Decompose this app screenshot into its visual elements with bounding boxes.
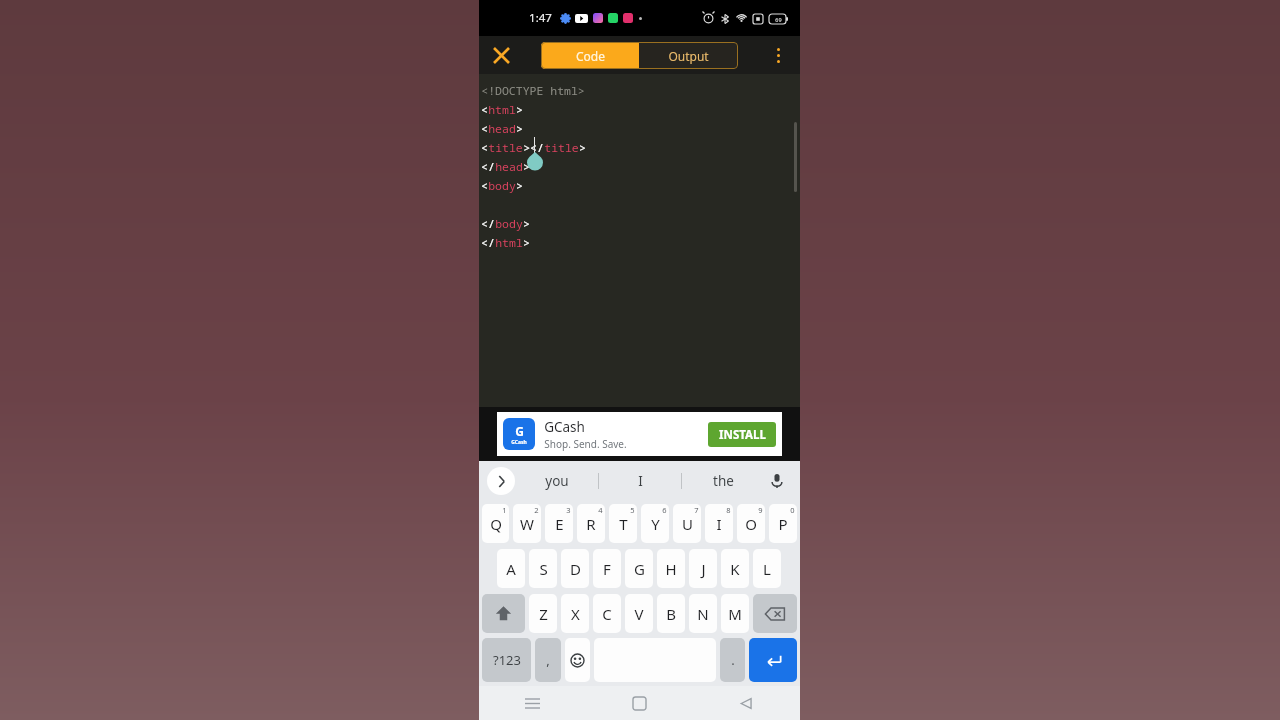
staticText: Z	[539, 604, 548, 624]
staticText: W	[520, 514, 534, 534]
staticText: D	[570, 559, 581, 579]
staticText: H	[665, 559, 677, 579]
staticText: Y	[651, 514, 660, 534]
staticText: >	[516, 121, 523, 137]
staticText: html	[495, 235, 523, 251]
staticText: 5	[630, 505, 635, 515]
button[interactable]: K	[721, 549, 749, 588]
staticText: title	[544, 140, 579, 156]
button[interactable]: Close	[487, 41, 515, 69]
staticText: N	[697, 604, 709, 624]
button[interactable]: Backspace	[753, 594, 797, 633]
staticText: you	[545, 472, 569, 490]
button[interactable]: I	[705, 504, 733, 543]
button[interactable]: I	[599, 461, 681, 501]
staticText: >	[516, 178, 523, 194]
staticText: A	[506, 559, 516, 579]
staticText: <!DOCTYPE html>	[481, 83, 585, 99]
staticText: >	[516, 102, 523, 118]
staticText: 7	[694, 505, 699, 515]
staticText: G	[515, 423, 524, 439]
button[interactable]: Home	[586, 686, 693, 720]
staticText: ?123	[493, 651, 521, 669]
staticText: K	[730, 559, 740, 579]
staticText: I	[716, 514, 722, 534]
staticText: E	[555, 514, 564, 534]
button[interactable]: Enter	[749, 638, 797, 682]
button[interactable]: X	[561, 594, 589, 633]
button[interactable]: .	[720, 638, 745, 682]
button[interactable]: F	[593, 549, 621, 588]
button[interactable]: G	[497, 412, 782, 456]
staticText: body	[488, 178, 516, 194]
button[interactable]: Recents	[479, 686, 586, 720]
staticText: 69	[775, 16, 782, 23]
staticText: html	[488, 102, 516, 118]
button[interactable]: O	[737, 504, 765, 543]
staticText: Output	[668, 48, 709, 64]
button[interactable]: the	[682, 461, 764, 501]
button[interactable]: S	[529, 549, 557, 588]
staticText: 8	[726, 505, 731, 515]
staticText: C	[602, 604, 612, 624]
button[interactable]: Expand suggestions	[487, 467, 515, 495]
staticText: ></	[523, 140, 544, 156]
button[interactable]: ?123	[482, 638, 531, 682]
button[interactable]: B	[657, 594, 685, 633]
button[interactable]: G	[625, 549, 653, 588]
button[interactable]: D	[561, 549, 589, 588]
button[interactable]: Back	[693, 686, 800, 720]
staticText: </	[481, 159, 495, 175]
button[interactable]: M	[721, 594, 749, 633]
staticText: Code	[576, 48, 605, 64]
button[interactable]: N	[689, 594, 717, 633]
staticText: </	[481, 216, 495, 232]
staticText: ,	[546, 651, 550, 669]
button[interactable]: A	[497, 549, 525, 588]
staticText: head	[495, 159, 523, 175]
button[interactable]: R	[577, 504, 605, 543]
staticText: J	[701, 559, 706, 579]
staticText: body	[495, 216, 523, 232]
button[interactable]: C	[593, 594, 621, 633]
button[interactable]: J	[689, 549, 717, 588]
button[interactable]: you	[515, 461, 598, 501]
staticText: M	[728, 604, 742, 624]
staticText: 1	[502, 505, 507, 515]
button[interactable]: W	[513, 504, 541, 543]
staticText: T	[619, 514, 628, 534]
button[interactable]: E	[545, 504, 573, 543]
button[interactable]: ,	[535, 638, 561, 682]
button[interactable]: Y	[641, 504, 669, 543]
button[interactable]: U	[673, 504, 701, 543]
button[interactable]: Z	[529, 594, 557, 633]
staticText: R	[586, 514, 596, 534]
staticText: 6	[662, 505, 667, 515]
staticText: .	[731, 651, 735, 669]
button[interactable]: Q	[482, 504, 509, 543]
button[interactable]: Shift	[482, 594, 525, 633]
staticText: V	[634, 604, 644, 624]
button[interactable]: Output	[639, 42, 738, 69]
button[interactable]: INSTALL	[708, 422, 776, 447]
staticText: 3	[566, 505, 571, 515]
staticText: 2	[534, 505, 539, 515]
button[interactable]: V	[625, 594, 653, 633]
button[interactable]: More options	[764, 41, 792, 69]
button[interactable]: T	[609, 504, 637, 543]
button[interactable]: Code	[541, 42, 639, 69]
button[interactable]: L	[753, 549, 781, 588]
staticText: Shop. Send. Save.	[544, 437, 627, 451]
staticText: GCash	[511, 439, 527, 446]
staticText: S	[539, 559, 548, 579]
staticText: X	[571, 604, 580, 624]
button[interactable]: H	[657, 549, 685, 588]
staticText: the	[713, 472, 734, 490]
staticText: <	[481, 178, 488, 194]
button[interactable]: Emoji	[565, 638, 590, 682]
button[interactable]: Voice input	[764, 468, 790, 494]
staticText: >	[579, 140, 586, 156]
button[interactable]: P	[769, 504, 797, 543]
staticText: title	[488, 140, 523, 156]
